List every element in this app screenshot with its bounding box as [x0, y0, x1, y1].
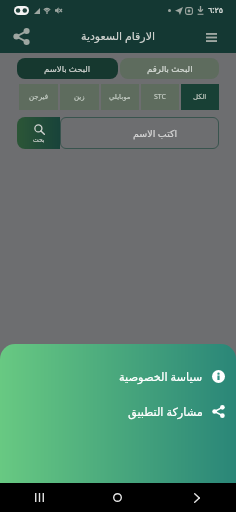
button[interactable]: Share [6, 21, 37, 52]
button[interactable]: Recent apps [0, 483, 78, 512]
button[interactable]: فيرجن [19, 84, 58, 110]
staticText: الارقام السعودية [81, 28, 155, 43]
button[interactable]: موبايلي [101, 84, 139, 110]
staticText: فيرجن [29, 93, 48, 101]
button[interactable]: سياسة الخصوصية [0, 365, 236, 387]
button[interactable]: STC [141, 84, 179, 110]
staticText: البحث بالاسم [44, 63, 91, 75]
button[interactable]: Back [157, 483, 236, 512]
staticText: زين [74, 93, 85, 101]
staticText: بحث [33, 136, 45, 143]
staticText: سياسة الخصوصية [119, 369, 203, 384]
staticText: ٦:٢٥ [208, 4, 224, 15]
staticText: الكل [193, 93, 207, 101]
button[interactable]: مشاركة التطبيق [0, 400, 236, 422]
staticText: مشاركة التطبيق [128, 404, 203, 419]
button[interactable]: البحث بالرقم [120, 58, 219, 79]
button[interactable]: Home [78, 483, 157, 512]
button[interactable]: البحث بالاسم [17, 58, 118, 79]
button[interactable]: بحث [17, 117, 60, 149]
staticText: البحث بالرقم [147, 63, 193, 75]
staticText: اكتب الاسم [133, 127, 178, 140]
button[interactable]: اكتب الاسم [60, 117, 219, 149]
staticText: STC [154, 92, 167, 102]
button[interactable]: الكل [181, 84, 219, 110]
button[interactable]: زين [60, 84, 99, 110]
button[interactable]: Menu [196, 22, 226, 52]
staticText: موبايلي [109, 93, 131, 101]
